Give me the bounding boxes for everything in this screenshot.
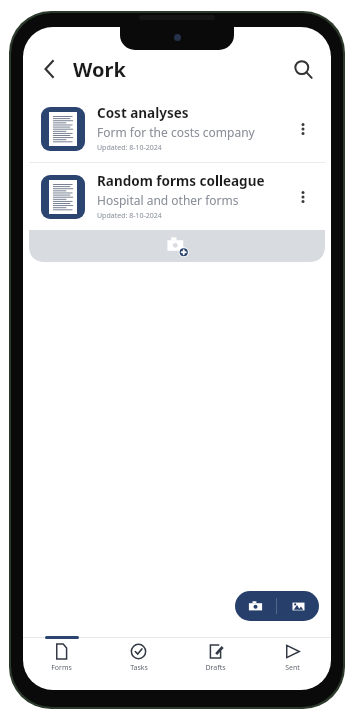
staticText: Tasks [130,663,148,673]
staticText: Cost analyses [97,104,189,122]
staticText: Updated: 8-10-2024 [97,211,162,221]
button[interactable]: Random forms colleague [29,163,325,230]
button[interactable]: Tasks [100,638,177,680]
button[interactable]: Search [285,51,321,87]
staticText: Form for the costs company [97,124,255,140]
button[interactable]: Add photo [29,230,325,262]
button[interactable]: Forms [23,638,100,680]
button[interactable]: Drafts [177,638,254,680]
button[interactable]: More options [289,183,317,211]
staticText: Hospital and other forms [97,192,239,208]
button[interactable]: Cost analyses [29,95,325,162]
staticText: Forms [51,663,72,673]
staticText: Drafts [205,663,226,673]
button[interactable]: Take photo [235,591,276,621]
staticText: Sent [285,663,300,673]
button[interactable]: Choose image [277,591,319,621]
staticText: Random forms colleague [97,172,265,190]
button[interactable]: Back [33,52,67,86]
button[interactable]: More options [289,115,317,143]
staticText: Updated: 8-10-2024 [97,143,162,153]
button[interactable]: Sent [254,638,331,680]
staticText: Work [73,56,126,83]
